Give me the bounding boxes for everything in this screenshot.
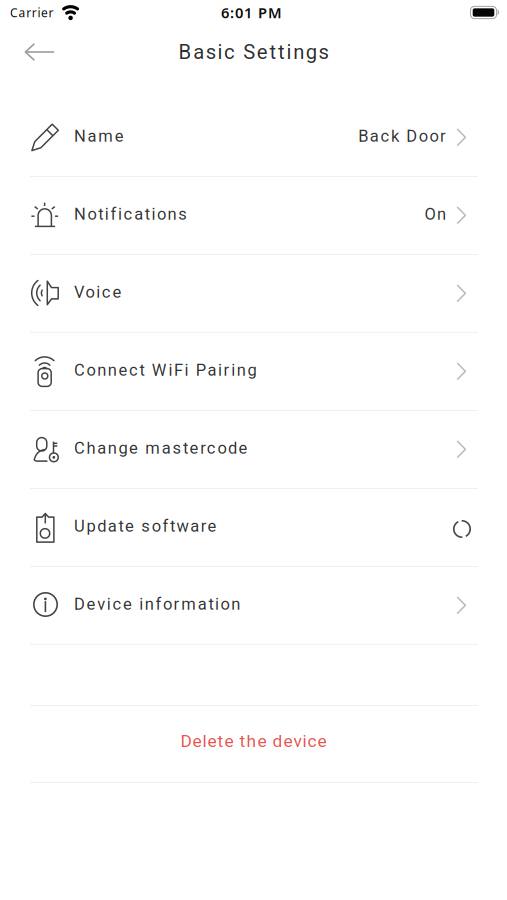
button[interactable]: Update software: [0, 489, 507, 567]
staticText: Device information: [74, 594, 240, 614]
staticText: Update software: [74, 516, 216, 536]
button[interactable]: Delete the device: [0, 705, 507, 783]
staticText: Change mastercode: [74, 438, 248, 458]
staticText: Back Door: [358, 126, 446, 146]
button[interactable]: Name: [0, 99, 507, 177]
button[interactable]: Voice: [0, 255, 507, 333]
staticText: Connect WiFi Pairing: [74, 360, 256, 380]
staticText: 6:01 PM: [221, 3, 282, 22]
button[interactable]: Connect WiFi Pairing: [0, 333, 507, 411]
button[interactable]: Back: [0, 43, 55, 61]
staticText: On: [424, 204, 446, 224]
staticText: Basic Settings: [179, 40, 328, 64]
staticText: Name: [74, 126, 124, 146]
staticText: Carrier: [10, 4, 54, 20]
button[interactable]: Change mastercode: [0, 411, 507, 489]
staticText: Notifications: [74, 204, 187, 224]
staticText: Delete the device: [180, 731, 326, 751]
staticText: Voice: [74, 282, 121, 302]
button[interactable]: Device information: [0, 567, 507, 645]
button[interactable]: Notifications: [0, 177, 507, 255]
